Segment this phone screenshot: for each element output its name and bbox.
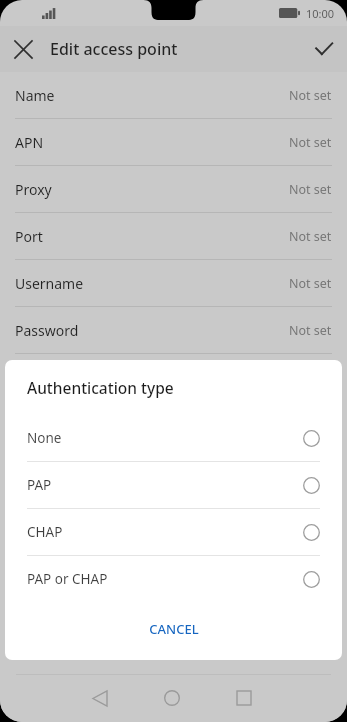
staticText: Authentication type xyxy=(27,377,174,398)
staticText: Not set xyxy=(289,181,332,198)
button[interactable]: None xyxy=(5,415,342,461)
button[interactable]: CHAP xyxy=(5,509,342,555)
staticText: Not set xyxy=(289,228,332,245)
staticText: Name xyxy=(15,86,55,105)
staticText: Not set xyxy=(289,322,332,339)
staticText: CHAP xyxy=(27,523,63,541)
staticText: Username xyxy=(15,274,84,293)
staticText: PAP or CHAP xyxy=(27,570,108,588)
staticText: Not set xyxy=(289,275,332,292)
button[interactable]: Username xyxy=(0,260,347,306)
staticText: Not set xyxy=(289,134,332,151)
staticText: Edit access point xyxy=(50,38,178,60)
button[interactable]: Recent apps xyxy=(220,674,268,722)
button[interactable]: Back xyxy=(76,674,124,722)
button[interactable]: Close xyxy=(0,26,46,72)
staticText: Not set xyxy=(289,87,332,104)
staticText: CANCEL xyxy=(149,620,199,638)
button[interactable]: PAP or CHAP xyxy=(5,556,342,602)
staticText: Port xyxy=(15,227,43,246)
staticText: None xyxy=(27,429,62,447)
staticText: Proxy xyxy=(15,180,52,199)
button[interactable]: PAP xyxy=(5,462,342,508)
staticText: Password xyxy=(15,321,79,340)
staticText: APN xyxy=(15,133,44,152)
button[interactable]: Save xyxy=(301,26,347,72)
button[interactable]: APN xyxy=(0,119,347,165)
button[interactable]: Home xyxy=(148,674,196,722)
button[interactable]: Name xyxy=(0,72,347,118)
staticText: 10:00 xyxy=(306,6,335,21)
button[interactable]: CANCEL xyxy=(5,606,342,652)
button[interactable]: Port xyxy=(0,213,347,259)
button[interactable]: Proxy xyxy=(0,166,347,212)
button[interactable]: Password xyxy=(0,307,347,353)
staticText: PAP xyxy=(27,476,52,494)
